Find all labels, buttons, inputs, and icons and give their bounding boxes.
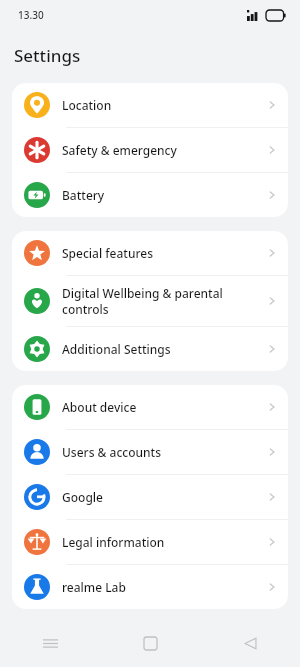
button[interactable]: Safety & emergency [12,128,288,172]
button[interactable]: Special features [12,231,288,275]
staticText: Digital Wellbeing & parental controls [62,285,258,317]
staticText: Safety & emergency [62,142,258,158]
button[interactable]: Additional Settings [12,327,288,371]
button[interactable]: Recents [0,619,100,667]
staticText: Battery [62,187,258,203]
staticText: Settings [14,44,81,67]
button[interactable]: Legal information [12,520,288,564]
staticText: Location [62,97,258,113]
button[interactable]: realme Lab [12,565,288,609]
button[interactable]: Google [12,475,288,519]
button[interactable]: Home [100,619,200,667]
button[interactable]: Digital Wellbeing & parental controls [12,276,288,326]
button[interactable]: Users & accounts [12,430,288,474]
button[interactable]: Location [12,83,288,127]
staticText: Users & accounts [62,444,258,460]
button[interactable]: About device [12,385,288,429]
staticText: Legal information [62,534,258,550]
staticText: realme Lab [62,579,258,595]
staticText: Special features [62,245,258,261]
staticText: Google [62,489,258,505]
button[interactable]: Back [200,619,300,667]
button[interactable]: Battery [12,173,288,217]
staticText: 13.30 [18,8,44,22]
staticText: About device [62,399,258,415]
staticText: Additional Settings [62,341,258,357]
